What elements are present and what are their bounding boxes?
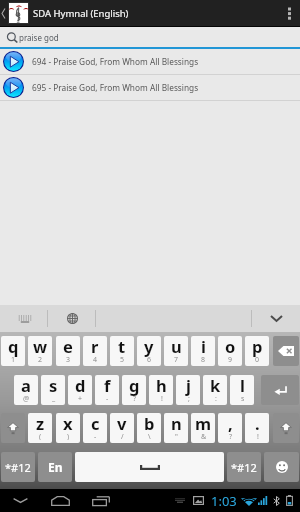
staticText: v [117,413,127,434]
staticText: e [63,336,73,357]
button[interactable]: 695 - Praise God, From Whom All Blessing… [0,75,300,100]
staticText: *#12 [5,460,31,475]
button[interactable]: r [83,336,107,366]
button[interactable]: , [218,413,242,443]
button[interactable]: Language [38,452,72,482]
staticText: . [255,413,260,434]
button[interactable]: . [245,413,269,443]
staticText: p [252,336,263,357]
staticText: ! [161,394,163,402]
button[interactable]: e [56,336,80,366]
button[interactable]: Symbols [1,452,35,482]
button[interactable]: Shift [1,413,25,443]
button[interactable]: praise god [0,27,300,47]
staticText: 695 - Praise God, From Whom All Blessing… [32,82,199,93]
button[interactable]: More options [278,0,300,26]
button[interactable]: o [218,336,242,366]
staticText: c [91,413,100,434]
staticText: s [241,394,245,402]
button[interactable]: x [56,413,80,443]
staticText: g [129,375,140,396]
staticText: 3 [66,355,71,363]
button[interactable]: t [110,336,134,366]
button[interactable]: y [137,336,161,366]
staticText: , [228,413,233,434]
button[interactable]: Home [43,489,77,512]
staticText: ; [188,394,190,402]
button[interactable]: Numbers [227,452,261,482]
staticText: l [240,375,245,396]
staticText: 6 [147,355,152,363]
staticText: x [63,413,73,434]
staticText: & [201,432,207,440]
staticText: : [215,394,217,402]
button[interactable]: i [191,336,215,366]
staticText: 5 [120,355,125,363]
button[interactable]: Back [3,489,37,512]
staticText: h [156,375,167,396]
staticText: n [171,413,182,434]
button[interactable]: Space [75,452,224,482]
button[interactable]: p [245,336,269,366]
button[interactable]: z [28,413,52,443]
staticText: j [186,375,191,396]
staticText: ! [257,432,259,440]
button[interactable]: h [149,375,173,405]
staticText: d [75,375,86,396]
staticText: i [201,336,206,357]
staticText: _ [52,394,56,402]
staticText: 9 [228,355,233,363]
button[interactable]: u [164,336,188,366]
staticText: / [121,432,124,440]
button[interactable]: Shift [273,413,299,443]
staticText: f [104,375,111,396]
button[interactable]: Backspace [273,336,299,366]
staticText: 4 [93,355,98,363]
button[interactable]: Emoji [264,452,299,482]
staticText: b [144,413,155,434]
button[interactable]: q [1,336,25,366]
button[interactable]: Change language [49,305,96,332]
button[interactable]: c [83,413,107,443]
staticText: *#12 [231,460,257,475]
button[interactable]: s [41,375,65,405]
staticText: + [78,394,83,402]
button[interactable]: d [68,375,92,405]
button[interactable]: f [95,375,119,405]
button[interactable]: Hide keyboard [253,305,300,332]
button[interactable]: a [14,375,38,405]
staticText: k [210,375,221,396]
button[interactable]: v [110,413,134,443]
button[interactable]: 694 - Praise God, From Whom All Blessing… [0,49,300,74]
button[interactable]: j [176,375,200,405]
staticText: " [175,432,178,440]
staticText: praise god [19,32,59,43]
button[interactable]: l [230,375,254,405]
staticText: y [144,336,154,357]
staticText: ( [39,432,42,440]
staticText: 1:03 [211,492,237,510]
button[interactable]: b [137,413,161,443]
staticText: SDA Hymnal (English) [33,7,129,20]
staticText: @ [23,394,30,402]
staticText: 2 [38,355,43,363]
staticText: ? [229,432,233,440]
button[interactable]: m [191,413,215,443]
staticText: \ [148,432,151,440]
staticText: r [91,336,99,357]
staticText: z [36,413,45,434]
staticText: w [33,336,48,357]
button[interactable]: Enter [261,375,299,405]
button[interactable]: w [28,336,52,366]
staticText: En [48,459,63,475]
button[interactable]: g [122,375,146,405]
staticText: q [8,336,19,357]
button[interactable]: Keyboard settings [1,305,48,332]
button[interactable]: k [203,375,227,405]
button[interactable]: Recents [84,489,118,512]
staticText: ? [133,394,137,402]
staticText: - [94,432,97,440]
button[interactable]: n [164,413,188,443]
staticText: 1 [11,355,16,363]
staticText: ) [67,432,70,440]
